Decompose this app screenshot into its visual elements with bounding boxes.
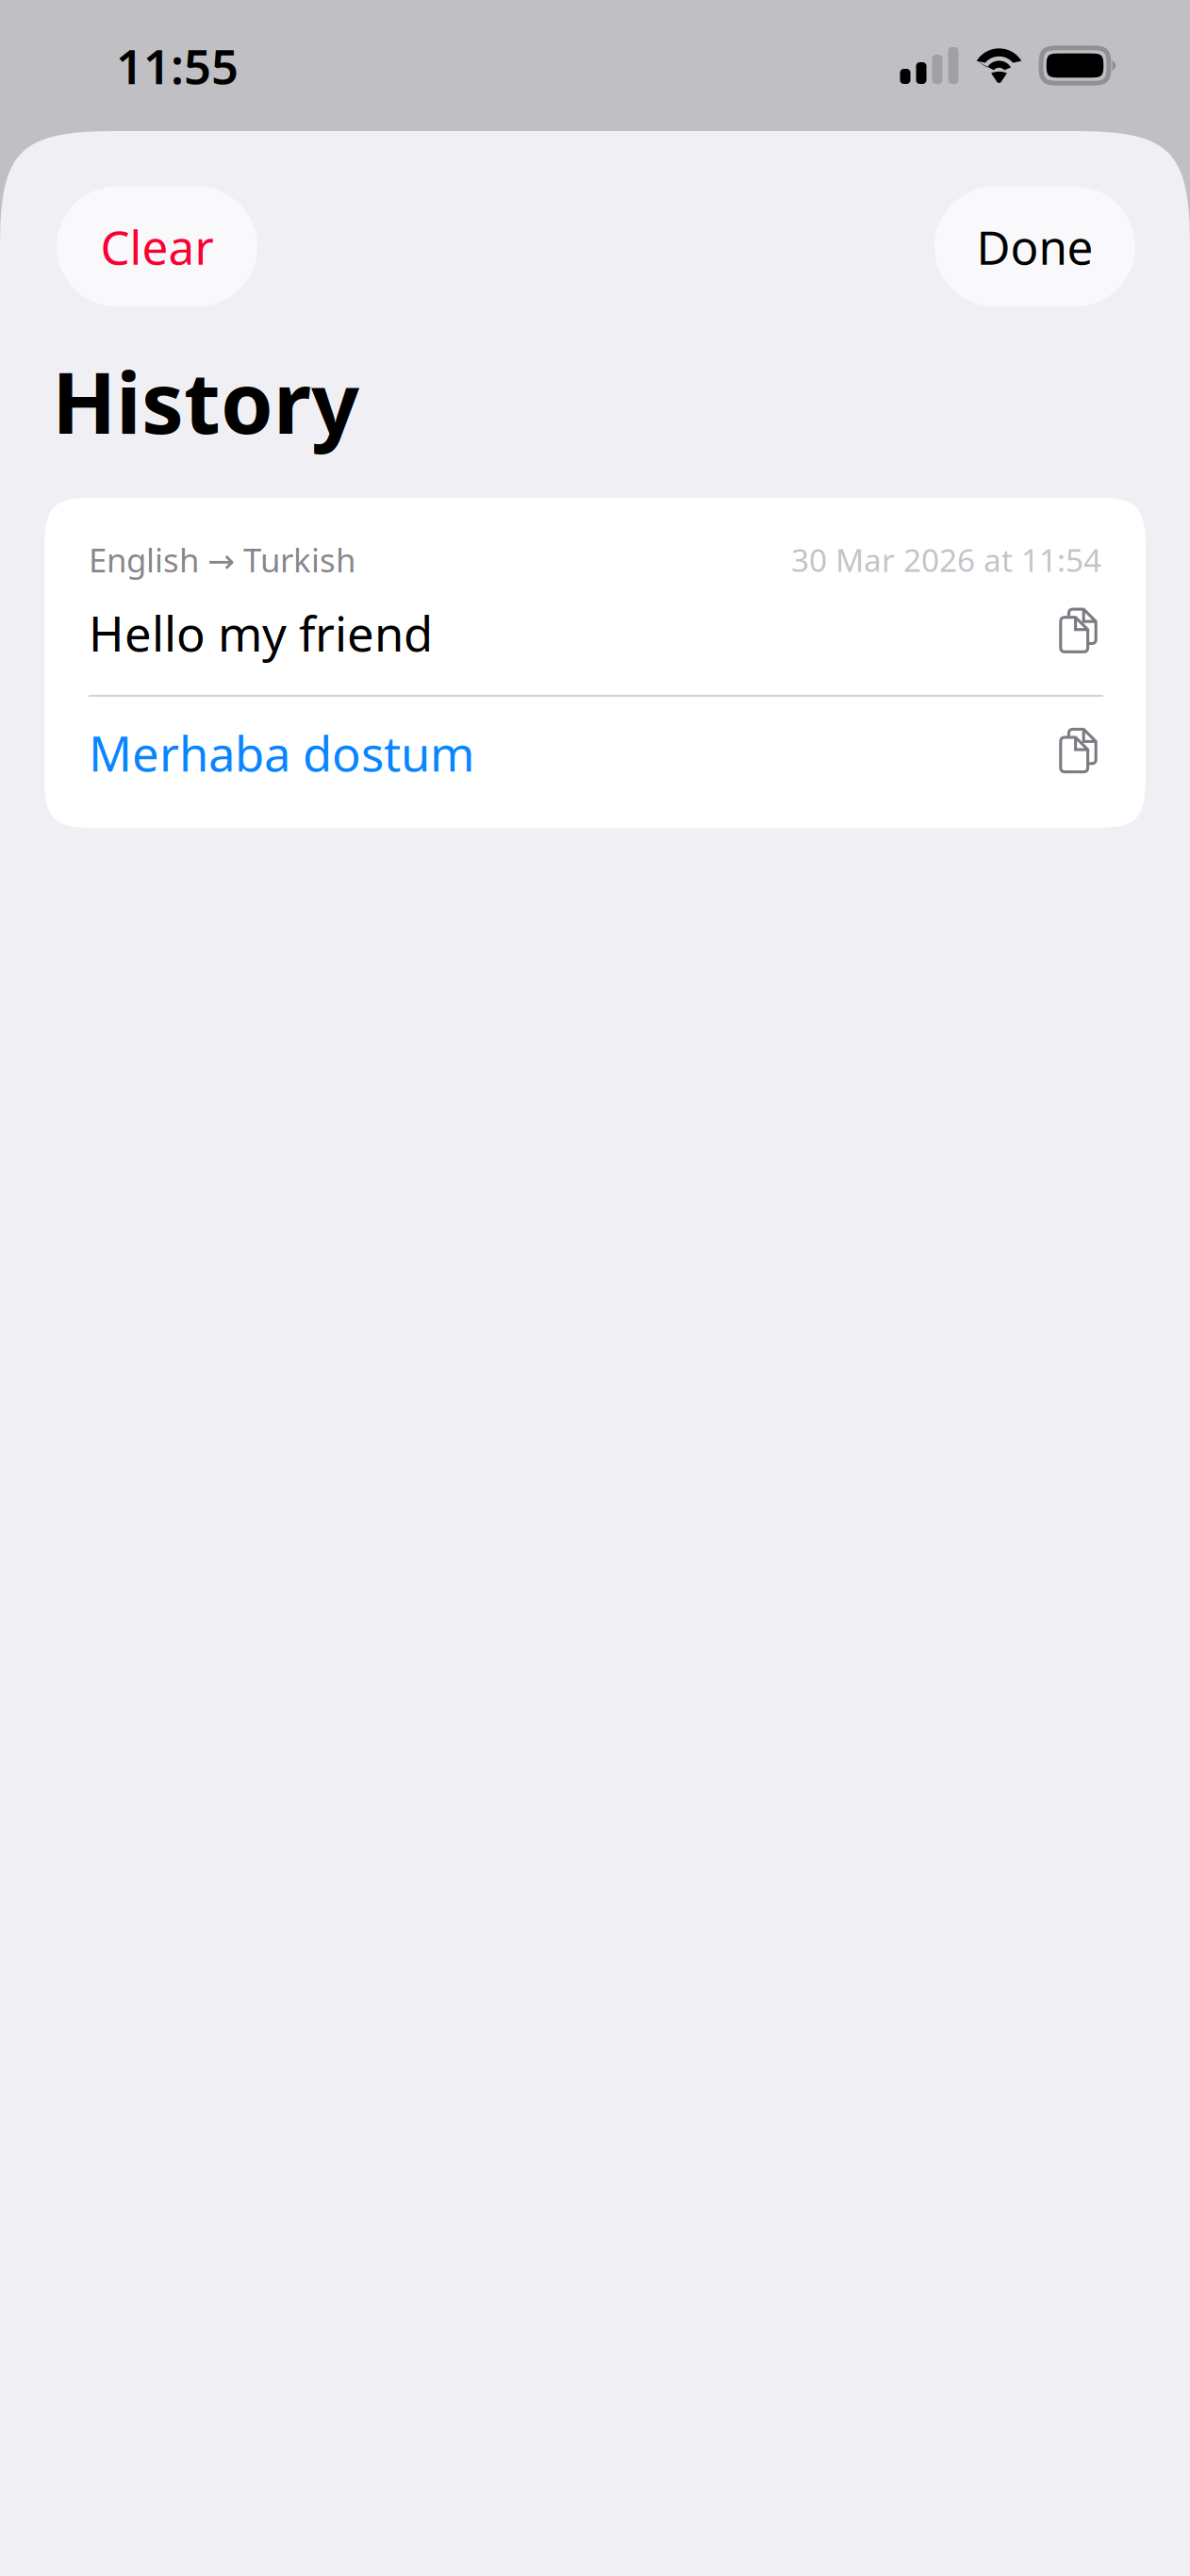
staticText: English → Turkish bbox=[89, 538, 355, 581]
staticText: Clear bbox=[100, 216, 214, 277]
staticText: 30 Mar 2026 at 11:54 bbox=[791, 539, 1101, 581]
button[interactable]: Clear bbox=[57, 187, 257, 306]
button[interactable]: Merhaba dostum bbox=[89, 721, 574, 785]
button[interactable]: Hello my friend bbox=[89, 601, 574, 665]
staticText: Hello my friend bbox=[89, 601, 433, 665]
button[interactable]: Done bbox=[934, 187, 1135, 306]
staticText: 11:55 bbox=[116, 34, 239, 97]
staticText: Done bbox=[976, 216, 1093, 277]
staticText: History bbox=[52, 345, 359, 457]
staticText: Merhaba dostum bbox=[89, 721, 474, 785]
button[interactable]: Copy Merhaba dostum bbox=[1060, 730, 1097, 776]
button[interactable]: Copy Hello my friend bbox=[1060, 610, 1097, 656]
